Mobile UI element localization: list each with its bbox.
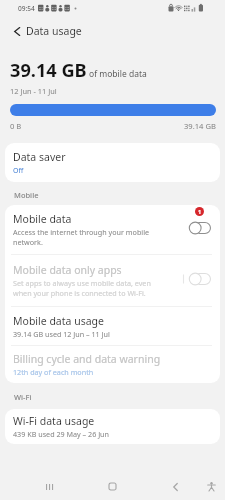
- staticText: of mobile data: [89, 68, 147, 80]
- button[interactable]: Navigate up: [7, 22, 26, 41]
- button[interactable]: Toggle: [189, 253, 211, 304]
- staticText: Data saver: [13, 150, 66, 164]
- button[interactable]: Wi-Fi data usage: [5, 409, 220, 444]
- staticText: network.: [13, 237, 43, 247]
- staticText: 09:54: [18, 4, 35, 13]
- staticText: Billing cycle and data warning: [13, 352, 161, 366]
- button[interactable]: Accessibility: [196, 471, 225, 500]
- staticText: Mobile data only apps: [13, 263, 122, 277]
- button[interactable]: Mobile data usage: [5, 307, 220, 345]
- staticText: 1: [198, 208, 202, 215]
- staticText: Mobile data: [13, 212, 72, 226]
- button[interactable]: Data saver: [5, 143, 220, 182]
- staticText: Mobile: [14, 190, 39, 200]
- staticText: 439 KB used 29 May – 26 Jun: [13, 429, 109, 439]
- staticText: 39.14 GB used 12 Jun – 11 Jul: [13, 329, 110, 339]
- button[interactable]: Mobile data toggle: [189, 205, 211, 252]
- staticText: 0 B: [10, 121, 22, 131]
- button[interactable]: Home: [97, 471, 128, 500]
- staticText: 39.14 GB: [184, 121, 216, 131]
- staticText: Access the internet through your mobile: [13, 227, 150, 237]
- staticText: Wi-Fi data usage: [13, 414, 95, 428]
- staticText: when your phone is connected to Wi-Fi.: [13, 288, 146, 298]
- staticText: Set apps to always use mobile data, even: [13, 278, 151, 288]
- staticText: Wi-Fi: [14, 392, 32, 402]
- button[interactable]: Mobile data: [5, 205, 220, 254]
- button[interactable]: Mobile data only apps: [5, 255, 220, 306]
- staticText: Mobile data usage: [13, 314, 104, 328]
- button[interactable]: Recent apps: [34, 471, 65, 500]
- staticText: 12 Jun - 11 Jul: [10, 86, 57, 96]
- staticText: 39.14 GB: [10, 58, 87, 83]
- staticText: Data usage: [26, 24, 82, 38]
- button[interactable]: Back: [160, 471, 191, 500]
- button[interactable]: Billing cycle and data warning: [5, 346, 220, 383]
- staticText: Off: [13, 166, 24, 176]
- staticText: 12th day of each month: [13, 367, 94, 377]
